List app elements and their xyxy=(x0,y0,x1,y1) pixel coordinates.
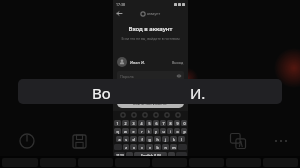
button[interactable]: Иван И. xyxy=(117,55,184,69)
staticText: e xyxy=(132,129,135,134)
button[interactable]: q xyxy=(114,128,121,134)
button[interactable]: Backspace xyxy=(178,144,187,150)
button[interactable]: Power xyxy=(14,128,40,154)
button[interactable]: Sticker xyxy=(164,112,170,118)
staticText: i xyxy=(170,129,171,134)
button[interactable]: 4 xyxy=(138,120,145,126)
button[interactable]: Clipboard xyxy=(120,112,126,118)
staticText: 6 xyxy=(155,121,158,126)
button[interactable]: Symbols xyxy=(114,152,125,158)
button[interactable]: h xyxy=(154,136,161,142)
button[interactable]: a xyxy=(116,136,122,142)
staticText: аккаунт xyxy=(147,11,161,16)
button[interactable]: Save xyxy=(66,128,92,154)
staticText: Во xyxy=(92,83,111,103)
button[interactable]: 9 xyxy=(174,120,180,126)
button[interactable]: o xyxy=(174,128,180,134)
button[interactable]: Space xyxy=(134,152,167,158)
button[interactable]: r xyxy=(138,128,145,134)
button[interactable]: 7 xyxy=(160,120,166,126)
staticText: 1 xyxy=(116,121,119,126)
staticText: . xyxy=(171,153,172,158)
button[interactable]: Translate xyxy=(225,128,251,154)
button[interactable]: 1 xyxy=(114,120,121,126)
button[interactable]: w xyxy=(122,128,129,134)
button[interactable]: 5 xyxy=(146,120,152,126)
staticText: Пароль xyxy=(120,74,134,79)
button[interactable]: Theme xyxy=(153,112,159,118)
button[interactable]: k xyxy=(170,136,177,142)
staticText: w xyxy=(124,129,127,134)
button[interactable]: Enter xyxy=(176,152,187,158)
button[interactable]: u xyxy=(160,128,166,134)
button[interactable]: i xyxy=(167,128,173,134)
staticText: t xyxy=(148,129,150,134)
staticText: j xyxy=(165,137,166,142)
button[interactable]: g xyxy=(146,136,153,142)
button[interactable]: n xyxy=(162,144,169,150)
staticText: h xyxy=(156,137,159,142)
button[interactable]: m xyxy=(170,144,177,150)
button[interactable]: . xyxy=(168,152,175,158)
button[interactable]: y xyxy=(153,128,159,134)
button[interactable]: s xyxy=(123,136,129,142)
staticText: v xyxy=(149,145,151,150)
staticText: 2 xyxy=(124,121,127,126)
staticText: x xyxy=(133,145,135,150)
button[interactable]: More xyxy=(175,112,181,118)
staticText: 7 xyxy=(162,121,165,126)
button[interactable]: x xyxy=(130,144,137,150)
button[interactable]: Войти как Иван И. xyxy=(117,98,184,108)
button[interactable]: l xyxy=(178,136,185,142)
staticText: f xyxy=(141,137,143,142)
staticText: 8 xyxy=(169,121,172,126)
button[interactable]: f xyxy=(138,136,145,142)
button[interactable]: 3 xyxy=(130,120,137,126)
staticText: Вход в аккаунт xyxy=(113,25,188,33)
staticText: 9 xyxy=(176,121,179,126)
staticText: z xyxy=(125,145,127,150)
staticText: English (US) xyxy=(141,153,161,158)
button[interactable]: z xyxy=(123,144,129,150)
staticText: m xyxy=(172,145,176,150)
button[interactable]: 6 xyxy=(153,120,159,126)
button[interactable]: d xyxy=(130,136,137,142)
button[interactable]: p xyxy=(181,128,187,134)
button[interactable]: t xyxy=(146,128,152,134)
button[interactable]: 8 xyxy=(167,120,173,126)
staticText: k xyxy=(173,137,175,142)
button[interactable]: 2 xyxy=(122,120,129,126)
button[interactable]: Shift xyxy=(114,144,122,150)
button[interactable]: Search xyxy=(142,112,148,118)
button[interactable]: Voice xyxy=(131,112,137,118)
staticText: l xyxy=(181,137,182,142)
button[interactable]: Back xyxy=(115,9,124,18)
button[interactable]: v xyxy=(146,144,153,150)
staticText: y xyxy=(155,129,157,134)
staticText: И. xyxy=(190,83,206,103)
button[interactable]: More options xyxy=(268,128,294,154)
button[interactable]: Пароль xyxy=(120,71,181,81)
staticText: u xyxy=(162,129,165,134)
button[interactable]: Home xyxy=(147,160,154,167)
button[interactable]: , xyxy=(126,152,133,158)
staticText: p xyxy=(183,129,186,134)
button[interactable]: j xyxy=(162,136,169,142)
button[interactable]: b xyxy=(154,144,161,150)
staticText: g xyxy=(148,137,151,142)
staticText: 4 xyxy=(140,121,143,126)
button[interactable]: e xyxy=(130,128,137,134)
button[interactable]: c xyxy=(138,144,145,150)
button[interactable]: Recents xyxy=(167,160,175,168)
button[interactable]: 0 xyxy=(181,120,187,126)
